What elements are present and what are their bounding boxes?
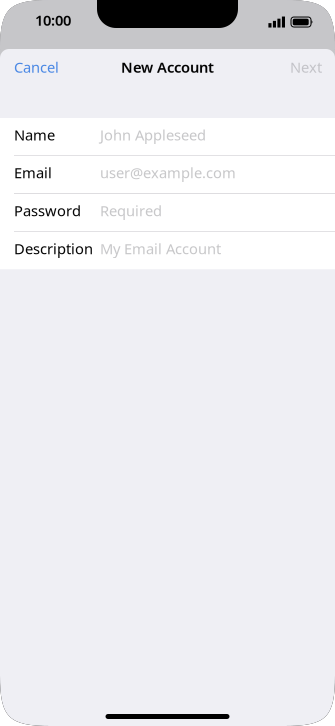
staticText: user@example.com — [100, 163, 236, 182]
button[interactable]: Description — [0, 232, 335, 269]
staticText: Name — [14, 125, 55, 144]
button[interactable]: Password — [0, 194, 335, 231]
staticText: 10:00 — [35, 10, 71, 30]
staticText: Next — [290, 57, 322, 77]
button[interactable]: Name — [0, 118, 335, 155]
button[interactable]: Email — [0, 156, 335, 193]
staticText: My Email Account — [100, 239, 221, 258]
staticText: Email — [14, 163, 52, 182]
staticText: John Appleseed — [100, 125, 206, 144]
staticText: Cancel — [14, 57, 59, 77]
staticText: Password — [14, 201, 81, 220]
staticText: New Account — [121, 57, 214, 77]
button[interactable]: Cancel — [0, 49, 67, 86]
staticText: Description — [14, 239, 93, 258]
button[interactable]: Next — [282, 49, 335, 86]
staticText: Required — [100, 201, 162, 220]
